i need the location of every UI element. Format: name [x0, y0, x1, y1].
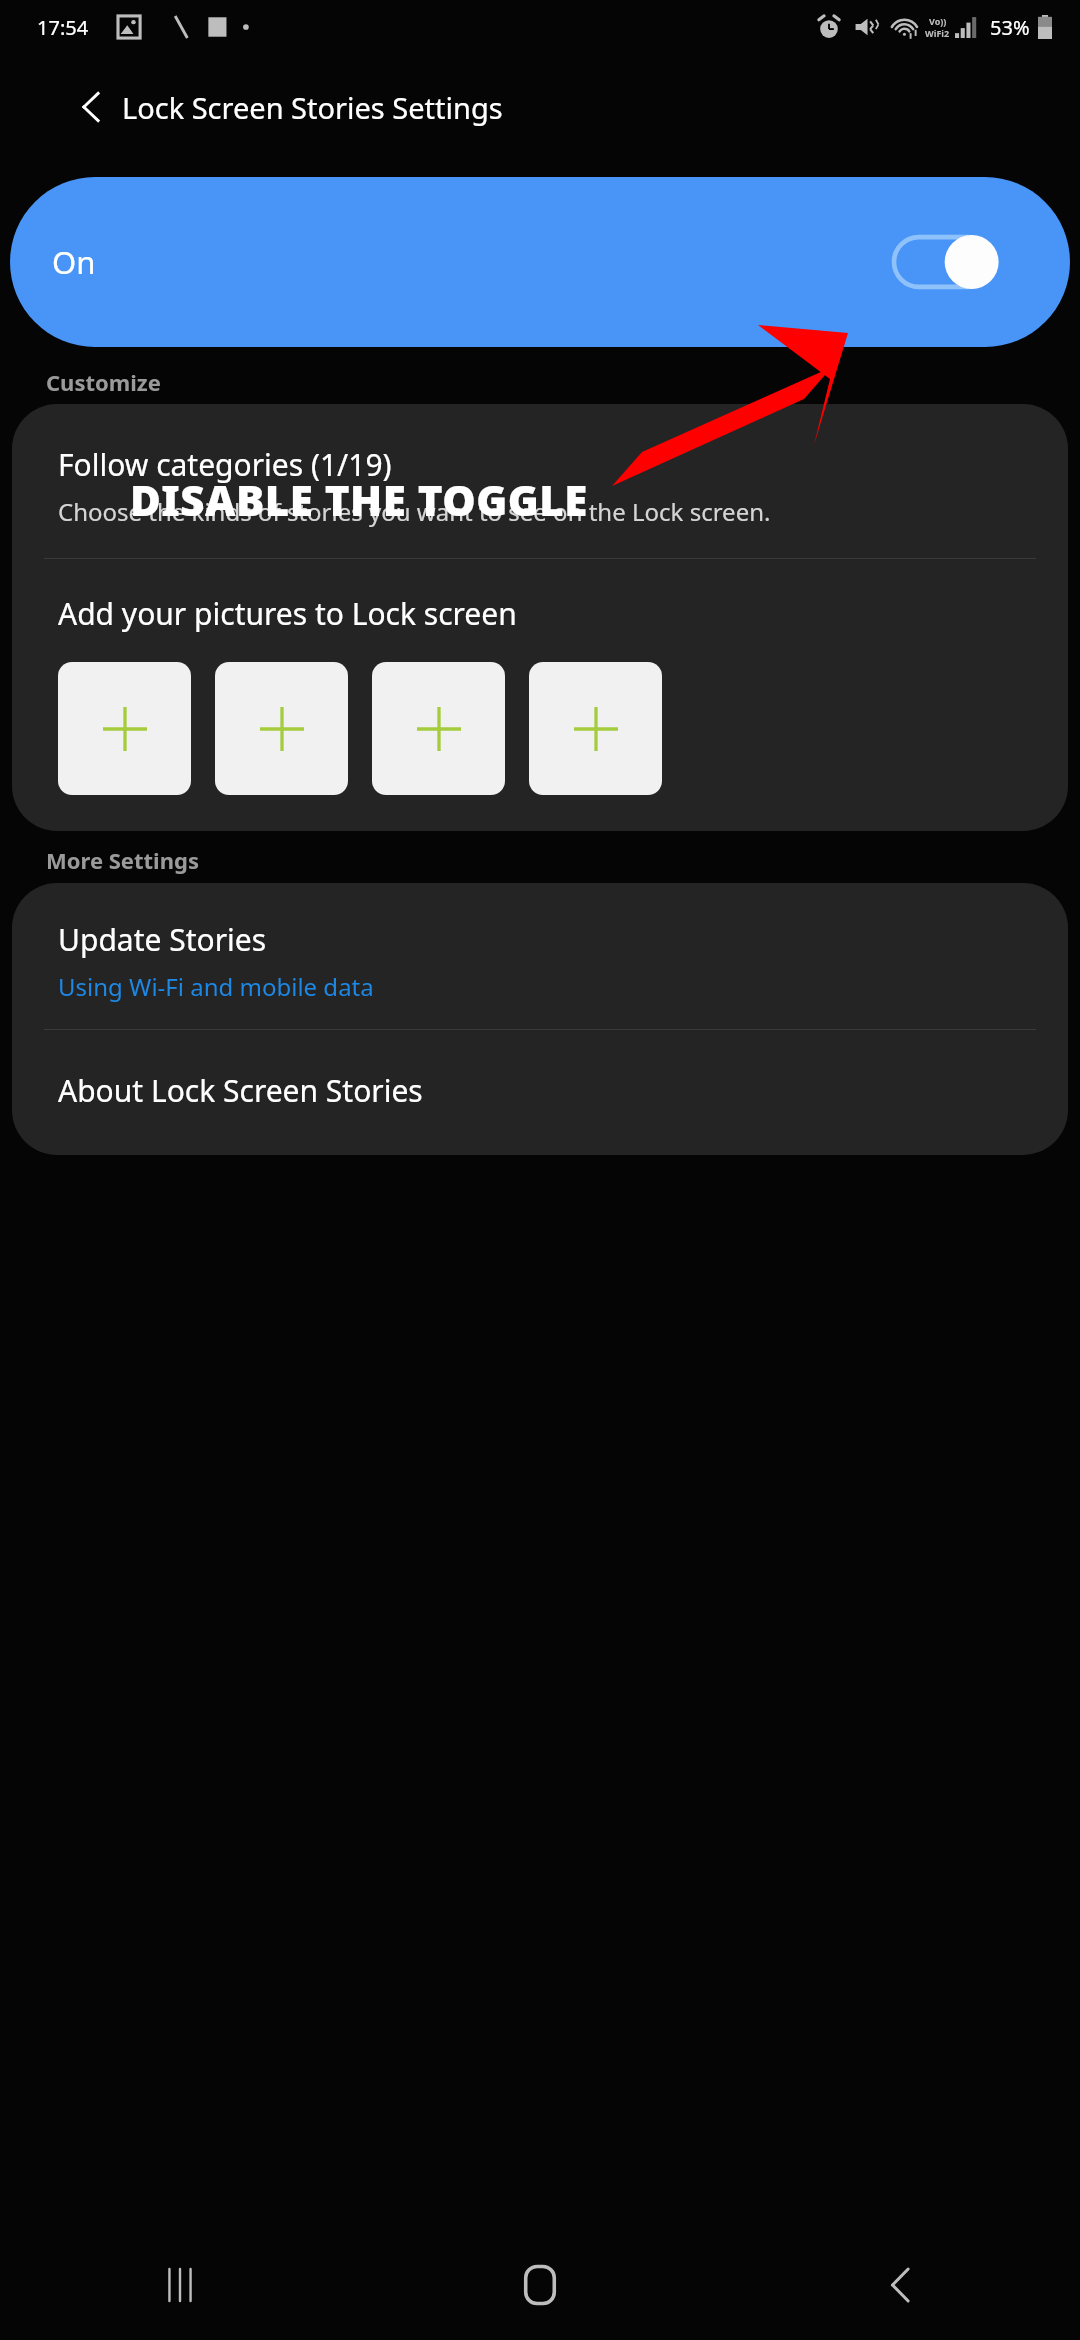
staticText: DISABLE THE TOGGLE	[130, 471, 588, 528]
button[interactable]: Back	[720, 2230, 1080, 2340]
button[interactable]: Follow categories (1/19)	[12, 404, 1068, 558]
staticText: On	[52, 241, 96, 283]
staticText: About Lock Screen Stories	[58, 1070, 423, 1111]
staticText: Lock Screen Stories Settings	[122, 88, 503, 127]
button[interactable]: Add picture	[372, 662, 505, 795]
staticText: Vo))	[929, 15, 947, 27]
button[interactable]: Add picture	[529, 662, 662, 795]
button[interactable]: Add picture	[58, 662, 191, 795]
staticText: WiFi2	[925, 27, 950, 39]
staticText: Customize	[46, 367, 161, 397]
staticText: Choose the kinds of stories you want to …	[58, 495, 771, 528]
button[interactable]: Recents	[0, 2230, 360, 2340]
button[interactable]: Update Stories	[12, 883, 1068, 1029]
button[interactable]: Home	[360, 2230, 720, 2340]
button[interactable]: Add your pictures to Lock screen	[12, 559, 1068, 831]
button[interactable]: On	[10, 177, 1070, 347]
button[interactable]: Add picture	[215, 662, 348, 795]
button[interactable]: About Lock Screen Stories	[12, 1030, 1068, 1155]
staticText: Add your pictures to Lock screen	[58, 593, 517, 634]
staticText: Update Stories	[58, 919, 267, 960]
staticText: Using Wi-Fi and mobile data	[58, 970, 374, 1003]
button[interactable]: Toggle Lock Screen Stories	[894, 235, 1000, 289]
staticText: 53%	[990, 14, 1030, 41]
button[interactable]: Back	[62, 77, 122, 137]
staticText: More Settings	[46, 845, 199, 875]
staticText: Follow categories (1/19)	[58, 444, 392, 485]
staticText: 17:54	[37, 14, 89, 41]
